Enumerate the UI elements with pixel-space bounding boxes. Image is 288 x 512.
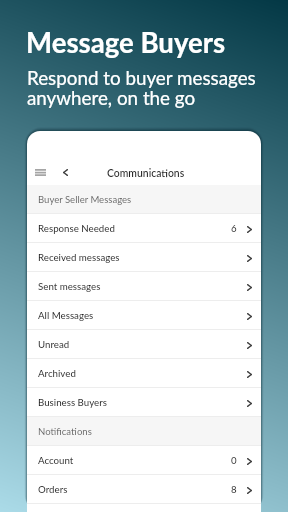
- button[interactable]: Business Buyers: [27, 388, 261, 417]
- button[interactable]: Archived: [27, 359, 261, 388]
- staticText: Account: [38, 454, 74, 466]
- button[interactable]: Back: [53, 160, 77, 184]
- staticText: Buyer Seller Messages: [38, 194, 132, 205]
- staticText: Unread: [38, 338, 70, 350]
- staticText: Orders: [38, 483, 68, 495]
- button[interactable]: Sent messages: [27, 272, 261, 301]
- button[interactable]: Unread: [27, 330, 261, 359]
- staticText: Received messages: [38, 251, 120, 263]
- staticText: Notifications: [38, 426, 92, 437]
- button[interactable]: Account: [27, 446, 261, 475]
- staticText: Archived: [38, 367, 76, 379]
- staticText: 6: [231, 222, 237, 234]
- staticText: Message Buyers: [26, 26, 226, 59]
- button[interactable]: All Messages: [27, 301, 261, 330]
- staticText: Sent messages: [38, 280, 101, 292]
- staticText: All Messages: [38, 309, 94, 321]
- staticText: 0: [231, 454, 237, 466]
- staticText: Business Buyers: [38, 396, 107, 408]
- button[interactable]: Response Needed: [27, 214, 261, 243]
- staticText: Respond to buyer messages anywhere, on t…: [27, 66, 256, 109]
- staticText: Communications: [107, 167, 185, 179]
- button[interactable]: Orders: [27, 475, 261, 504]
- staticText: Response Needed: [38, 222, 115, 234]
- staticText: 8: [231, 483, 237, 495]
- button[interactable]: Menu: [28, 160, 52, 184]
- button[interactable]: Received messages: [27, 243, 261, 272]
